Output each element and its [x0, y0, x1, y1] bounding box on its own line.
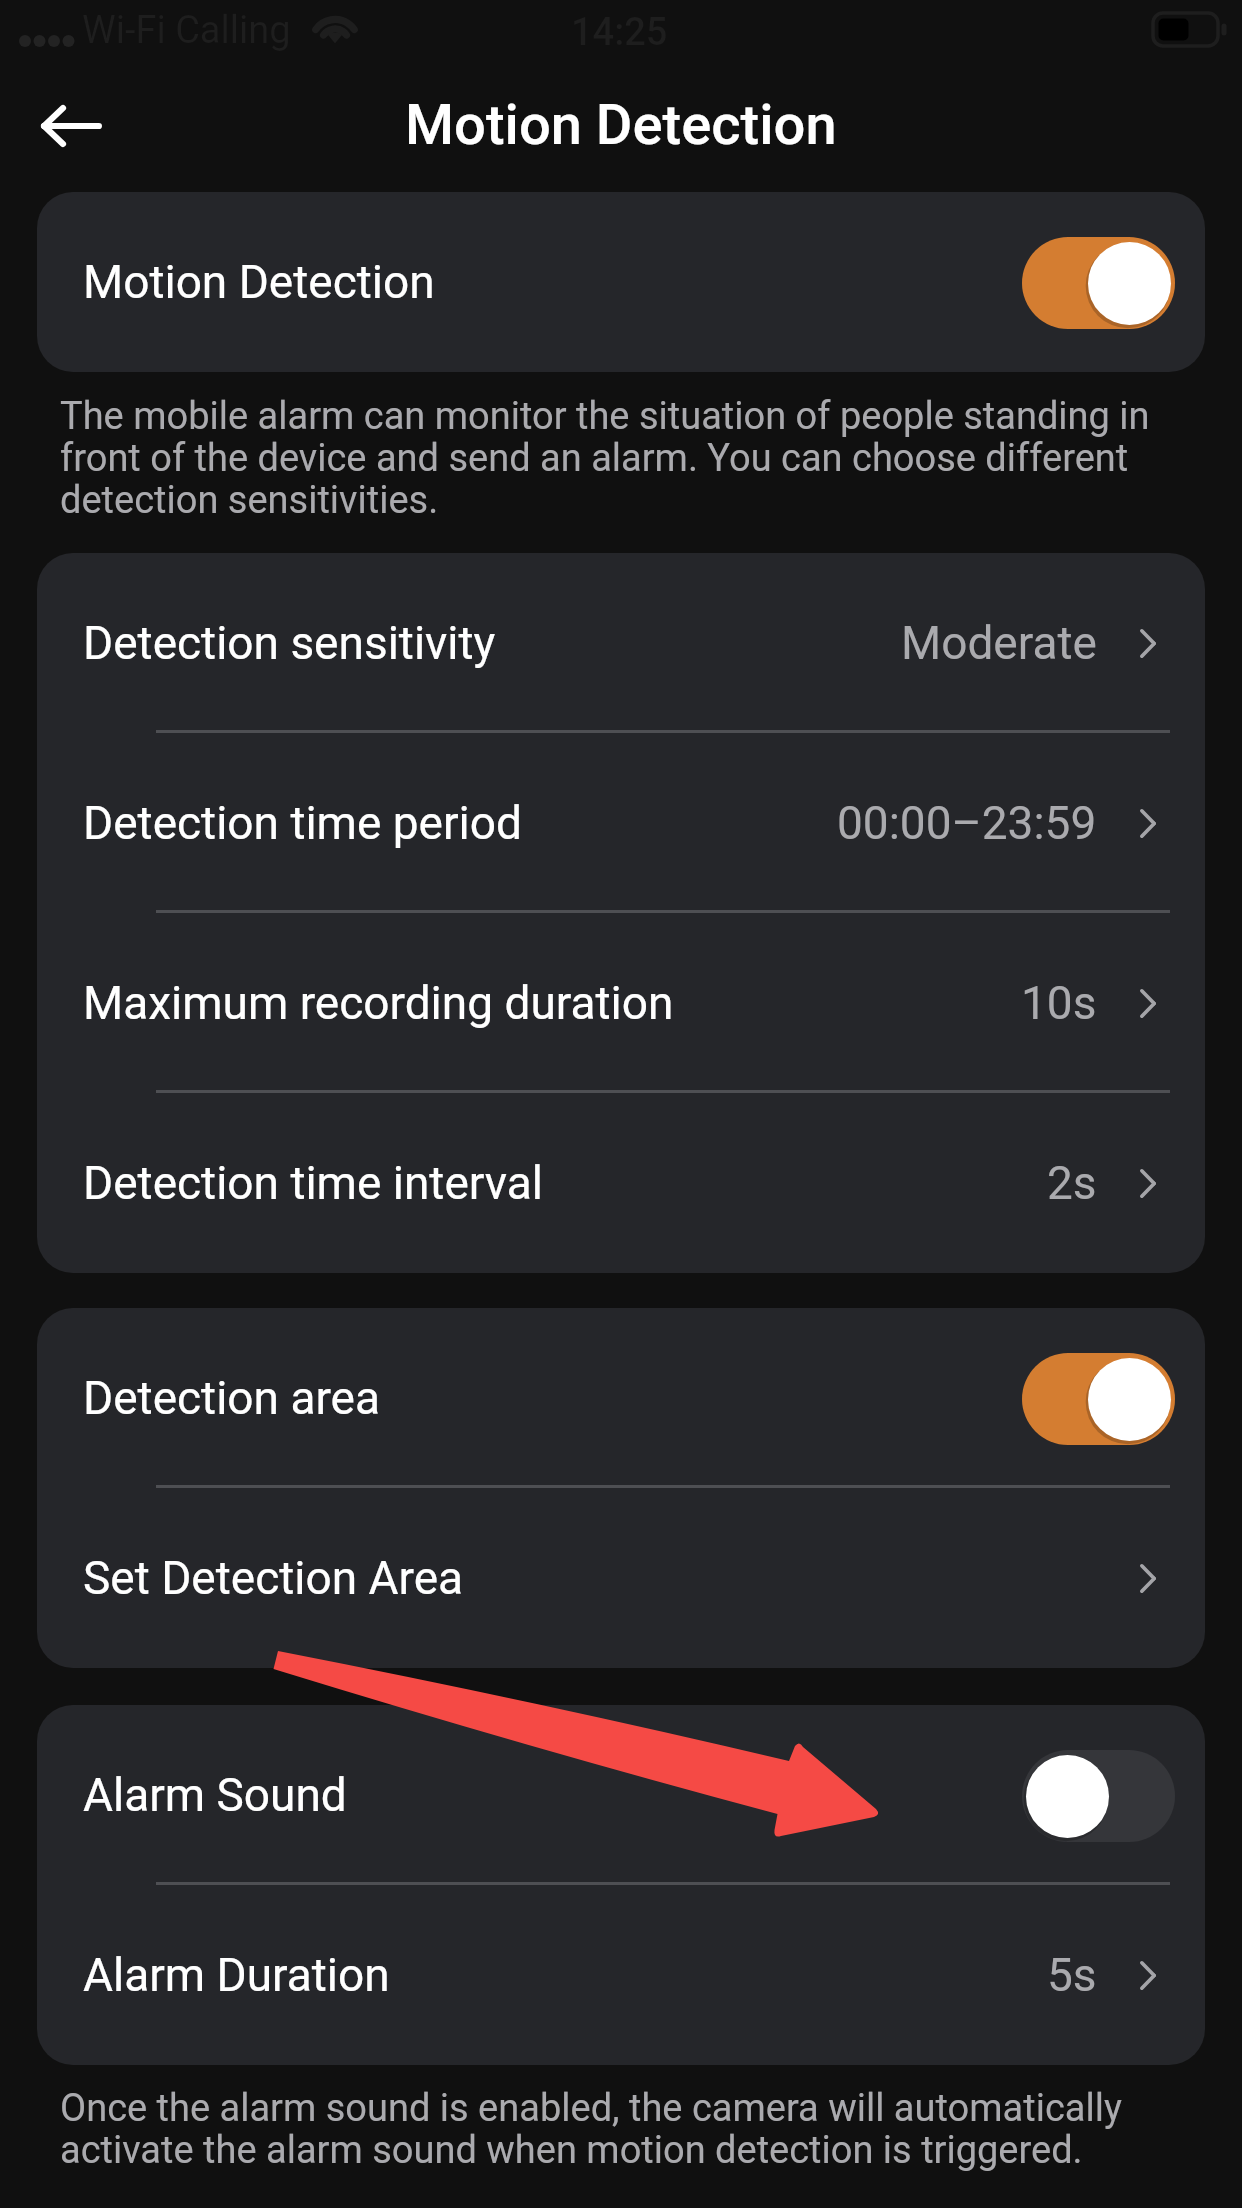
- staticText: Alarm Sound: [83, 1768, 347, 1822]
- button[interactable]: Detection area: [37, 1308, 1205, 1488]
- staticText: Detection area: [83, 1371, 380, 1425]
- staticText: Once the alarm sound is enabled, the cam…: [60, 2086, 1180, 2173]
- button[interactable]: Set Detection Area: [37, 1488, 1205, 1668]
- button[interactable]: Toggle on: [1022, 1353, 1175, 1445]
- staticText: 00:00–23:59: [837, 796, 1097, 850]
- staticText: Detection sensitivity: [83, 616, 496, 670]
- button[interactable]: Toggle off: [1022, 1750, 1175, 1842]
- staticText: Motion Detection: [405, 92, 837, 158]
- button[interactable]: Alarm Sound: [37, 1705, 1205, 1885]
- staticText: Detection time period: [83, 796, 522, 850]
- button[interactable]: Maximum recording duration: [37, 913, 1205, 1093]
- staticText: Motion Detection: [83, 255, 435, 309]
- staticText: 14:25: [571, 10, 668, 55]
- button[interactable]: Detection time interval: [37, 1093, 1205, 1273]
- button[interactable]: Toggle on: [1022, 237, 1175, 329]
- button[interactable]: Alarm Duration: [37, 1885, 1205, 2065]
- staticText: Wi-Fi Calling: [82, 8, 291, 53]
- staticText: 5s: [1047, 1948, 1097, 2002]
- staticText: 2s: [1047, 1156, 1097, 1210]
- button[interactable]: Back: [14, 68, 129, 183]
- button[interactable]: Detection time period: [37, 733, 1205, 913]
- staticText: Alarm Duration: [83, 1948, 390, 2002]
- staticText: 10s: [1021, 976, 1097, 1030]
- button[interactable]: Detection sensitivity: [37, 553, 1205, 733]
- button[interactable]: Motion Detection: [37, 192, 1205, 372]
- staticText: Maximum recording duration: [83, 976, 674, 1030]
- staticText: Detection time interval: [83, 1156, 543, 1210]
- staticText: Set Detection Area: [83, 1551, 464, 1605]
- staticText: The mobile alarm can monitor the situati…: [60, 394, 1180, 523]
- staticText: Moderate: [901, 616, 1097, 670]
